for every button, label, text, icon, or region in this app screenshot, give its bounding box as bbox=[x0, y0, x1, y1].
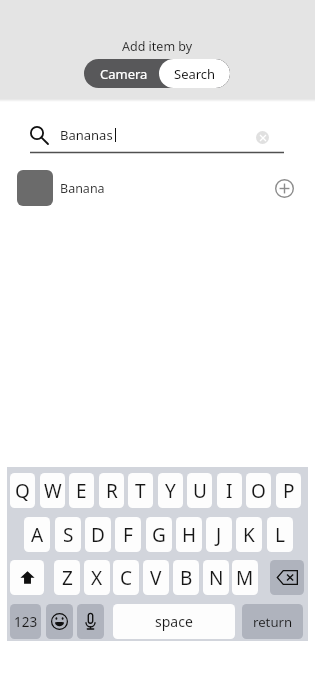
button[interactable]: F bbox=[115, 517, 141, 552]
staticText: Y bbox=[165, 478, 176, 504]
button[interactable]: Banana bbox=[0, 170, 315, 206]
button[interactable]: Camera bbox=[84, 59, 159, 88]
button[interactable]: J bbox=[206, 517, 232, 552]
staticText: R bbox=[106, 478, 118, 504]
staticText: Add item by bbox=[122, 38, 193, 55]
staticText: O bbox=[251, 478, 266, 504]
staticText: W bbox=[44, 478, 62, 504]
button[interactable]: 123 bbox=[10, 604, 41, 639]
button[interactable]: E bbox=[69, 473, 94, 508]
staticText: Bananas bbox=[60, 126, 113, 144]
staticText: J bbox=[216, 522, 222, 548]
staticText: D bbox=[91, 522, 105, 548]
staticText: X bbox=[91, 565, 103, 591]
staticText: U bbox=[193, 478, 207, 504]
staticText: F bbox=[123, 522, 133, 548]
button[interactable]: K bbox=[236, 517, 262, 552]
button[interactable]: V bbox=[143, 560, 169, 595]
button[interactable]: S bbox=[55, 517, 81, 552]
staticText: Search bbox=[174, 65, 216, 83]
staticText: space bbox=[155, 612, 193, 631]
button[interactable]: Y bbox=[158, 473, 183, 508]
staticText: return bbox=[253, 613, 293, 631]
staticText: Banana bbox=[60, 180, 105, 197]
button[interactable]: T bbox=[128, 473, 153, 508]
button[interactable]: Clear text bbox=[256, 131, 269, 144]
button[interactable]: Emoji bbox=[46, 604, 73, 639]
staticText: B bbox=[180, 565, 193, 591]
button[interactable]: Voice input bbox=[77, 604, 104, 639]
button[interactable]: H bbox=[176, 517, 202, 552]
staticText: L bbox=[275, 522, 285, 548]
staticText: S bbox=[63, 522, 74, 548]
staticText: I bbox=[226, 478, 233, 504]
button[interactable]: O bbox=[246, 473, 271, 508]
staticText: T bbox=[135, 478, 146, 504]
staticText: Q bbox=[15, 478, 30, 504]
button[interactable]: L bbox=[267, 517, 293, 552]
button[interactable]: space bbox=[113, 604, 235, 639]
staticText: H bbox=[182, 522, 197, 548]
button[interactable]: M bbox=[232, 560, 258, 595]
button[interactable]: I bbox=[217, 473, 242, 508]
button[interactable]: U bbox=[187, 473, 212, 508]
button[interactable]: Add Banana bbox=[275, 179, 294, 198]
button[interactable]: P bbox=[276, 473, 301, 508]
button[interactable]: R bbox=[99, 473, 124, 508]
staticText: Z bbox=[62, 565, 73, 591]
button[interactable]: X bbox=[84, 560, 110, 595]
staticText: A bbox=[31, 522, 44, 548]
staticText: G bbox=[152, 522, 166, 548]
button[interactable]: Z bbox=[54, 560, 80, 595]
button[interactable]: W bbox=[40, 473, 65, 508]
button[interactable]: C bbox=[113, 560, 139, 595]
staticText: P bbox=[283, 478, 295, 504]
button[interactable]: Shift bbox=[10, 560, 44, 595]
button[interactable]: N bbox=[203, 560, 229, 595]
staticText: M bbox=[236, 565, 254, 591]
staticText: E bbox=[76, 478, 87, 504]
button[interactable]: B bbox=[173, 560, 199, 595]
button[interactable]: Q bbox=[10, 473, 35, 508]
staticText: V bbox=[150, 565, 162, 591]
button[interactable]: Backspace bbox=[270, 560, 304, 595]
button[interactable]: return bbox=[242, 604, 303, 639]
button[interactable]: G bbox=[146, 517, 172, 552]
button[interactable]: Search bbox=[159, 59, 230, 88]
staticText: K bbox=[243, 522, 255, 548]
staticText: Camera bbox=[100, 65, 148, 83]
button[interactable]: A bbox=[24, 517, 50, 552]
staticText: N bbox=[209, 565, 224, 591]
staticText: C bbox=[120, 565, 133, 591]
button[interactable]: D bbox=[85, 517, 111, 552]
staticText: 123 bbox=[14, 613, 38, 631]
